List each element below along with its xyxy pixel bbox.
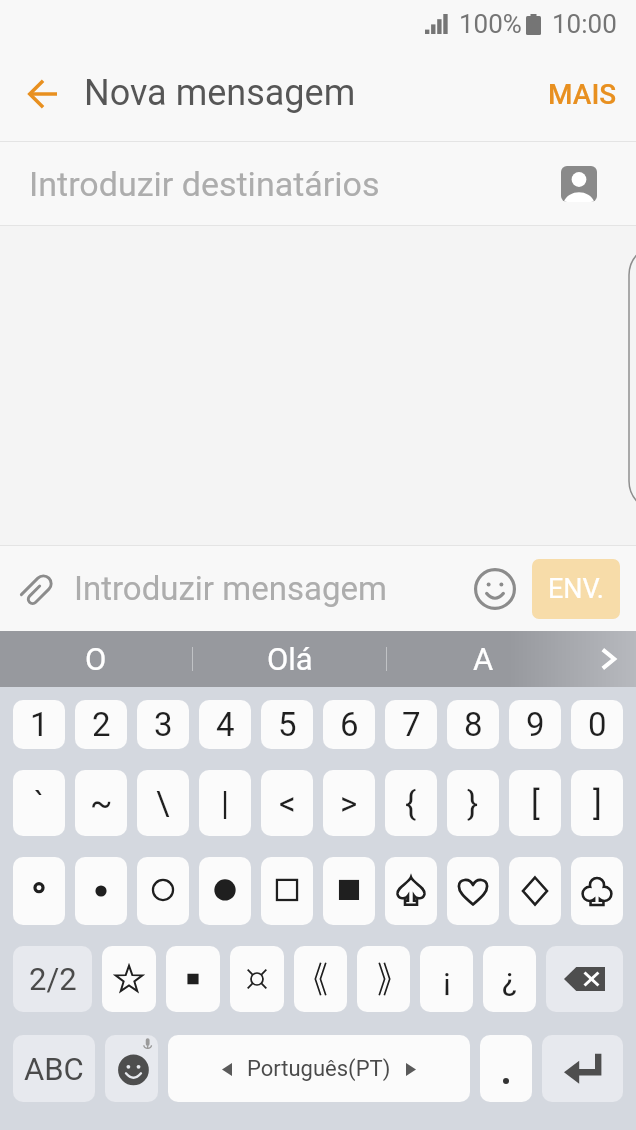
staticText: | <box>221 784 230 823</box>
button[interactable]: O <box>0 631 192 687</box>
button[interactable]: dot <box>75 857 127 925</box>
button[interactable]: Choose contacts <box>561 166 597 202</box>
button[interactable]: ¿ <box>483 946 536 1012</box>
button[interactable]: squareF <box>323 857 375 925</box>
button[interactable]: Olá <box>193 631 386 687</box>
button[interactable]: | <box>199 770 251 836</box>
button[interactable]: 1 <box>13 700 65 749</box>
button[interactable]: Back <box>10 62 74 126</box>
staticText: ¿ <box>502 960 518 998</box>
staticText: ` <box>34 784 45 823</box>
button[interactable]: 0 <box>571 700 623 749</box>
button[interactable]: ` <box>13 770 65 836</box>
button[interactable]: diamond <box>509 857 561 925</box>
staticText: { <box>405 784 417 823</box>
button[interactable]: squareO <box>261 857 313 925</box>
button[interactable]: currency <box>230 946 284 1012</box>
staticText: 2/2 <box>29 961 77 997</box>
staticText: ABC <box>24 1051 84 1087</box>
button[interactable]: 8 <box>447 700 499 749</box>
button[interactable]: Introduzir destinatários <box>0 142 636 225</box>
button[interactable]: 2 <box>75 700 127 749</box>
staticText: 1 <box>30 705 49 744</box>
button[interactable]: 5 <box>261 700 313 749</box>
staticText: 0 <box>588 705 607 744</box>
button[interactable]: 9 <box>509 700 561 749</box>
staticText: O <box>85 641 107 677</box>
staticText: 7 <box>402 705 421 744</box>
button[interactable]: raq <box>357 946 410 1012</box>
staticText: [ <box>531 784 540 823</box>
staticText: 8 <box>464 705 483 744</box>
staticText: \ <box>156 784 170 823</box>
staticText: 3 <box>154 705 173 744</box>
button[interactable]: [ <box>509 770 561 836</box>
button[interactable]: Insert emoji <box>473 567 517 611</box>
button[interactable]: Emoji and voice input <box>105 1035 158 1102</box>
button[interactable]: star <box>102 946 156 1012</box>
button[interactable]: 3 <box>137 700 189 749</box>
staticText: Português(PT) <box>247 1056 391 1082</box>
button[interactable]: 2/2 <box>13 946 92 1012</box>
staticText: 5 <box>278 705 297 744</box>
button[interactable]: Backspace <box>546 946 623 1012</box>
staticText: Olá <box>267 641 313 677</box>
button[interactable]: laq <box>294 946 347 1012</box>
staticText: MAIS <box>548 78 617 111</box>
button[interactable]: > <box>323 770 375 836</box>
staticText: ~ <box>90 784 113 823</box>
staticText: Nova mensagem <box>84 72 356 114</box>
staticText: ENV. <box>548 573 604 605</box>
staticText: < <box>279 784 296 823</box>
button[interactable]: \ <box>137 770 189 836</box>
button[interactable]: ] <box>571 770 623 836</box>
staticText: 100% <box>459 9 522 39</box>
button[interactable]: Period <box>480 1035 532 1102</box>
staticText: Introduzir destinatários <box>29 164 380 204</box>
button[interactable]: Attach file <box>8 559 68 619</box>
staticText: 9 <box>526 705 545 744</box>
button[interactable]: MAIS <box>526 47 636 141</box>
button[interactable]: { <box>385 770 437 836</box>
button[interactable]: More suggestions <box>580 631 636 687</box>
button[interactable]: 7 <box>385 700 437 749</box>
staticText: 4 <box>216 705 235 744</box>
button[interactable]: heart <box>447 857 499 925</box>
staticText: ¡ <box>443 960 451 998</box>
staticText: 6 <box>340 705 359 744</box>
button[interactable]: ~ <box>75 770 127 836</box>
button[interactable]: club <box>571 857 623 925</box>
button[interactable]: 6 <box>323 700 375 749</box>
button[interactable]: 4 <box>199 700 251 749</box>
staticText: > <box>340 784 358 823</box>
button[interactable]: A <box>387 631 580 687</box>
staticText: Introduzir mensagem <box>74 569 387 608</box>
button[interactable]: } <box>447 770 499 836</box>
button[interactable]: ABC <box>13 1035 95 1102</box>
button[interactable]: Space, Português (PT) <box>168 1035 470 1102</box>
button[interactable]: smallsq <box>166 946 220 1012</box>
staticText: 10:00 <box>552 9 617 39</box>
staticText: } <box>467 784 479 823</box>
button[interactable]: ENV. <box>532 559 620 619</box>
staticText: A <box>473 641 494 677</box>
button[interactable]: < <box>261 770 313 836</box>
staticText: 2 <box>92 705 111 744</box>
button[interactable]: circleO <box>137 857 189 925</box>
button[interactable]: Enter <box>542 1035 623 1102</box>
staticText: ] <box>593 784 602 823</box>
button[interactable]: spade <box>385 857 437 925</box>
button[interactable]: ¡ <box>420 946 473 1012</box>
button[interactable]: ring <box>13 857 65 925</box>
button[interactable]: circleF <box>199 857 251 925</box>
